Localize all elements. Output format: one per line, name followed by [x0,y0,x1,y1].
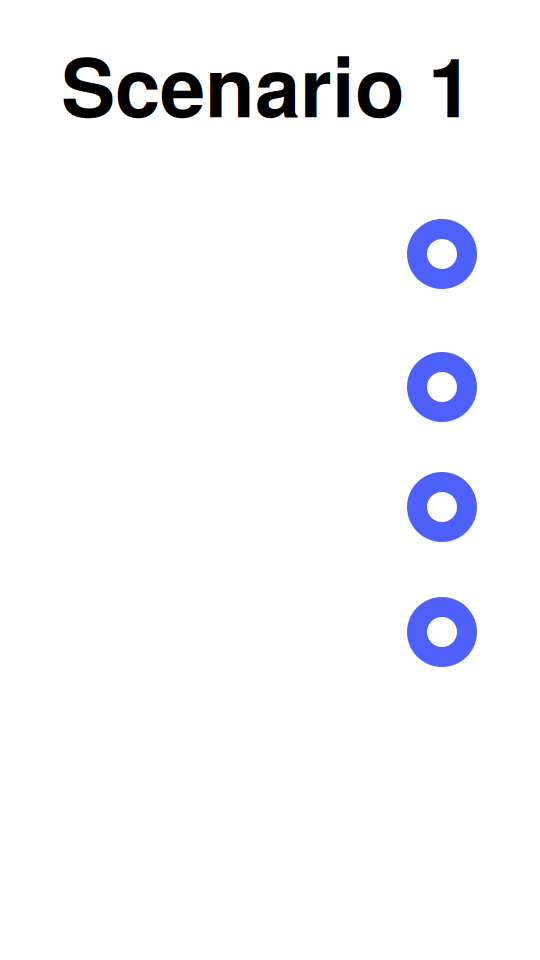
button[interactable]: Option 2 [407,352,477,422]
button[interactable]: Option 3 [407,472,477,542]
staticText: Scenario 1 [61,26,473,142]
button[interactable]: Option 1 [407,219,477,289]
button[interactable]: Option 4 [407,597,477,667]
